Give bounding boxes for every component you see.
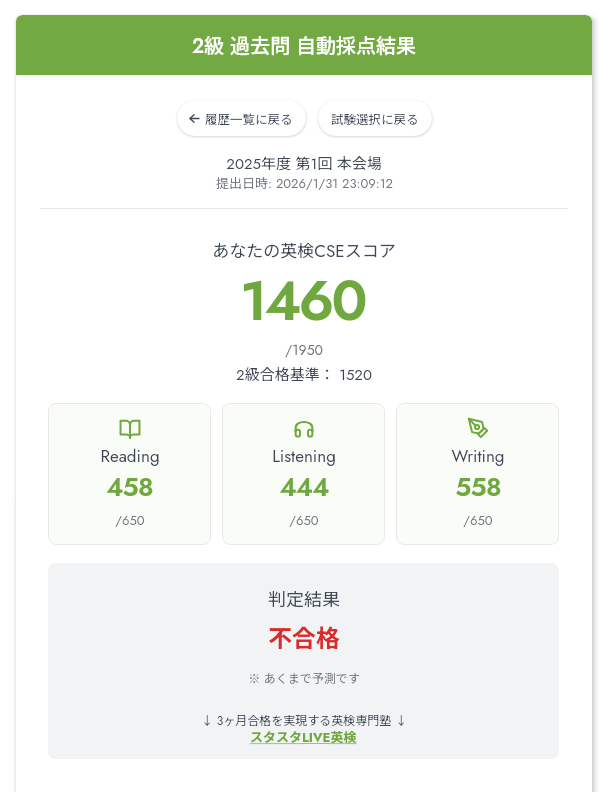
button[interactable]: Reading <box>48 403 211 545</box>
staticText: 不合格 <box>268 619 340 654</box>
staticText: あなたの英検CSEスコア <box>212 237 396 263</box>
staticText: 444 <box>279 468 329 506</box>
staticText: 判定結果 <box>268 585 340 611</box>
staticText: 2級合格基準： 1520 <box>236 363 372 386</box>
staticText: 458 <box>106 468 153 506</box>
staticText: ※ あくまで予測です <box>248 669 360 687</box>
staticText: /1950 <box>285 340 323 360</box>
other: Listening <box>293 417 315 439</box>
staticText: 試験選択に戻る <box>331 109 419 127</box>
button[interactable]: スタスタLIVE英検 <box>250 727 357 747</box>
staticText: 558 <box>455 468 501 506</box>
other: Writing <box>467 417 489 439</box>
button[interactable]: Listening <box>222 403 385 545</box>
staticText: 提出日時: 2026/1/31 23:09:12 <box>216 173 393 193</box>
staticText: 1460 <box>240 260 365 341</box>
staticText: Writing <box>451 444 505 469</box>
button[interactable]: 試験選択に戻る <box>318 100 432 136</box>
other: Reading <box>119 417 141 439</box>
staticText: /650 <box>289 511 319 530</box>
button[interactable]: 履歴一覧に戻る <box>177 100 306 136</box>
button[interactable]: Writing <box>396 403 559 545</box>
staticText: 2025年度 第1回 本会場 <box>226 152 382 175</box>
staticText: Listening <box>272 444 336 469</box>
staticText: /650 <box>115 511 145 530</box>
staticText: /650 <box>463 511 493 530</box>
staticText: Reading <box>100 444 160 469</box>
staticText: 履歴一覧に戻る <box>205 109 293 127</box>
staticText: 2級 過去問 自動採点結果 <box>192 30 417 61</box>
staticText: ↓ 3ヶ月合格を実現する英検専門塾 ↓ <box>201 711 407 729</box>
